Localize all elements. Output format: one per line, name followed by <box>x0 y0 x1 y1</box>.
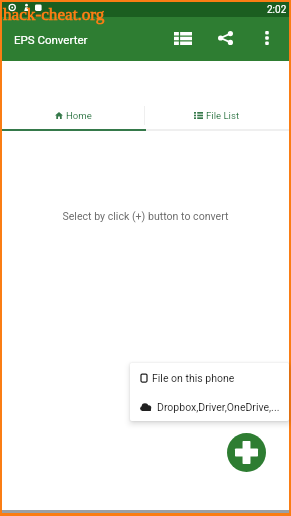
button[interactable]: View list <box>165 20 201 56</box>
button[interactable]: More options <box>249 20 285 56</box>
button[interactable]: File on this phone <box>130 363 289 392</box>
staticText: File on this phone <box>152 372 235 384</box>
staticText: 2:02 <box>267 4 287 16</box>
staticText: EPS Converter <box>14 33 88 46</box>
button[interactable]: Share <box>207 20 243 56</box>
button[interactable]: Home <box>2 103 145 127</box>
staticText: Home <box>66 110 92 121</box>
button[interactable]: Dropbox,Driver,OneDrive,... <box>130 392 289 421</box>
staticText: Dropbox,Driver,OneDrive,... <box>157 401 280 413</box>
button[interactable]: Add <box>227 433 266 472</box>
staticText: hack-cheat.org <box>3 5 105 24</box>
staticText: Select by click (+) button to convert <box>2 210 289 222</box>
staticText: File List <box>206 110 240 121</box>
button[interactable]: File List <box>145 103 289 127</box>
